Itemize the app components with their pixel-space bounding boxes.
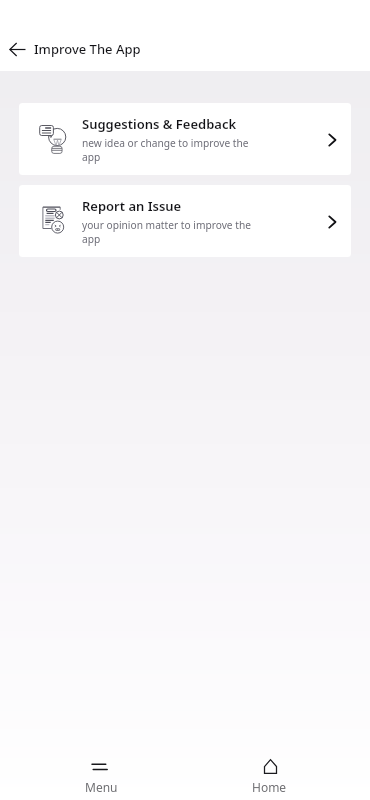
button[interactable]: Home xyxy=(185,759,353,795)
button[interactable]: Menu xyxy=(17,759,185,795)
staticText: new idea or change to improve the app xyxy=(82,136,249,164)
staticText: Suggestions & Feedback xyxy=(82,115,237,133)
staticText: your opinion matter to improve the app xyxy=(82,218,251,246)
staticText: Report an Issue xyxy=(82,197,182,215)
staticText: Menu xyxy=(85,779,118,795)
button[interactable]: Open xyxy=(313,119,351,159)
button[interactable]: Open xyxy=(313,201,351,241)
button[interactable]: Report an Issue xyxy=(19,185,351,257)
staticText: Improve The App xyxy=(34,40,141,58)
button[interactable]: Suggestions & Feedback xyxy=(19,103,351,175)
button[interactable]: Back xyxy=(2,34,32,64)
staticText: Home xyxy=(252,779,287,795)
